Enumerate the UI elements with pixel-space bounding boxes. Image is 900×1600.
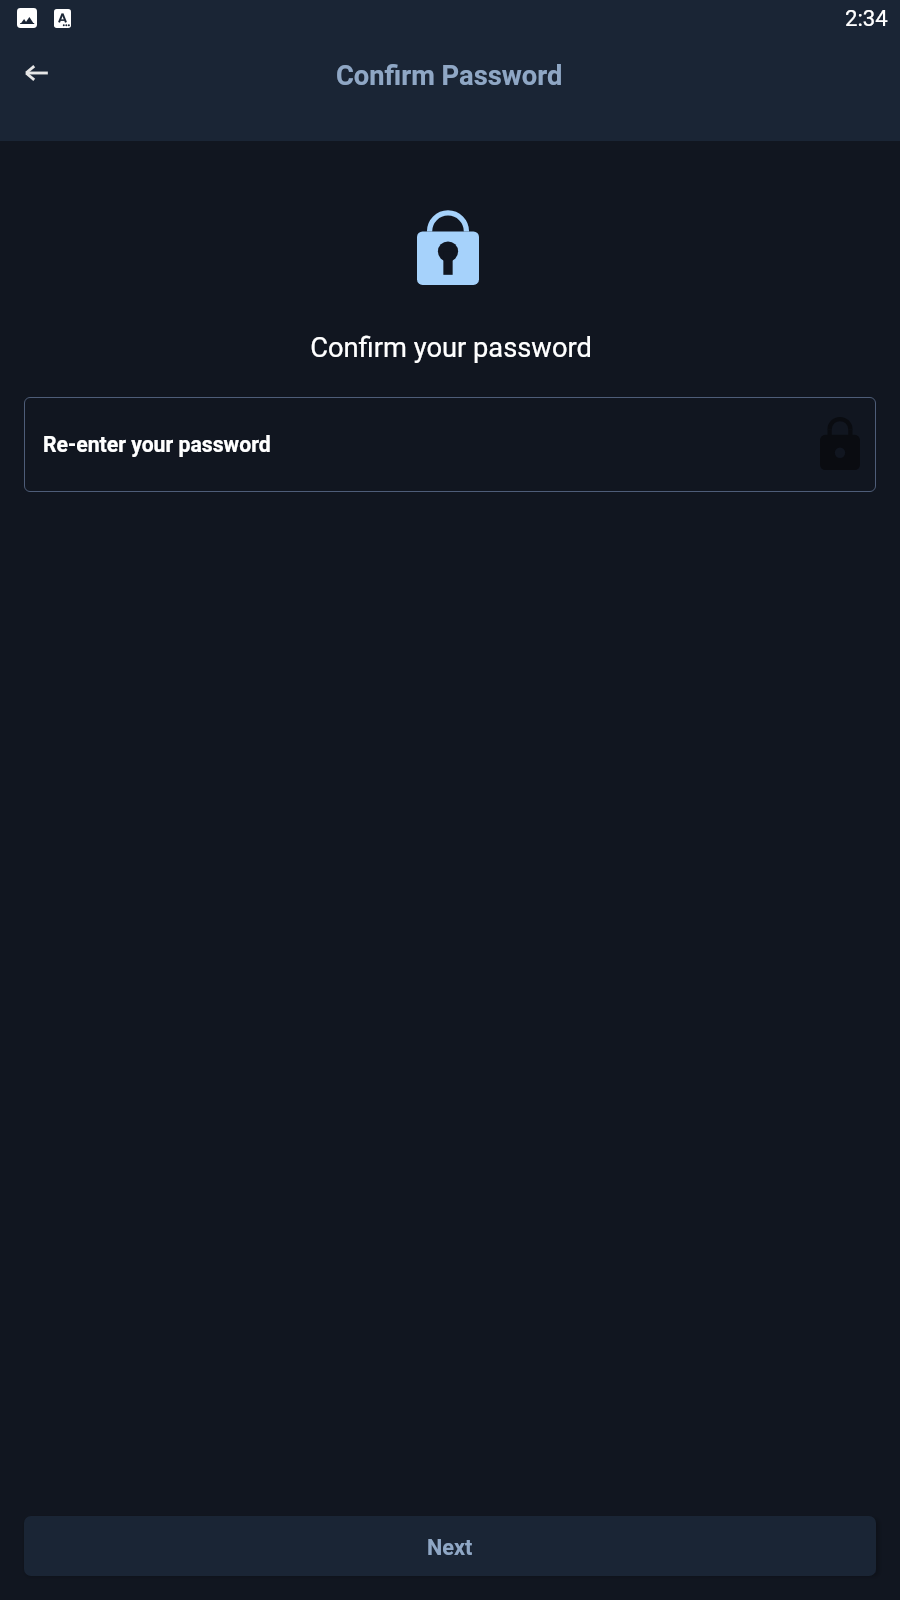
button[interactable]: Next [24, 1516, 876, 1576]
staticText: Next [427, 1535, 473, 1560]
staticText: Confirm your password [1, 332, 900, 364]
button[interactable]: Re-enter your password [24, 397, 876, 492]
staticText: Re-enter your password [43, 432, 271, 457]
button[interactable]: Back [8, 45, 64, 101]
staticText: Confirm Password [336, 60, 563, 92]
staticText: 2:34 [845, 5, 888, 31]
